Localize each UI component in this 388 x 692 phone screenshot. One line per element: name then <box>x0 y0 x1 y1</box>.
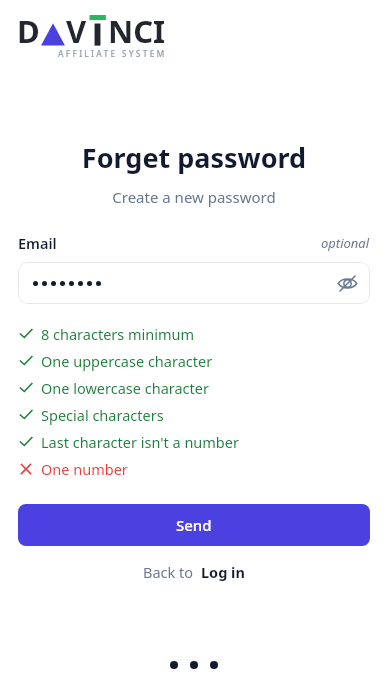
staticText: Special characters <box>41 405 164 425</box>
staticText: AFFILIATE SYSTEM <box>58 48 167 60</box>
button[interactable]: Page 3 <box>210 661 218 669</box>
staticText: Last character isn't a number <box>41 432 239 452</box>
button[interactable]: Page 2 <box>190 661 198 669</box>
staticText: Create a new password <box>0 187 388 207</box>
staticText: V <box>66 10 87 48</box>
staticText: One lowercase character <box>41 378 209 398</box>
button[interactable]: Log in <box>201 562 245 582</box>
staticText: Back to <box>143 562 194 582</box>
staticText: D <box>17 10 40 48</box>
staticText: One number <box>41 459 128 479</box>
staticText: Log in <box>201 562 245 582</box>
staticText: Email <box>18 233 57 253</box>
staticText: Send <box>176 515 212 535</box>
staticText: NCI <box>108 10 166 48</box>
staticText: 8 characters minimum <box>41 324 195 344</box>
button[interactable]: Show password <box>332 268 362 298</box>
staticText: Forget password <box>0 139 388 176</box>
button[interactable]: Send <box>18 504 370 546</box>
button[interactable]: Show password <box>18 262 370 304</box>
button[interactable]: Page 1 <box>170 661 178 669</box>
staticText: optional <box>321 234 370 252</box>
staticText: One uppercase character <box>41 351 213 371</box>
